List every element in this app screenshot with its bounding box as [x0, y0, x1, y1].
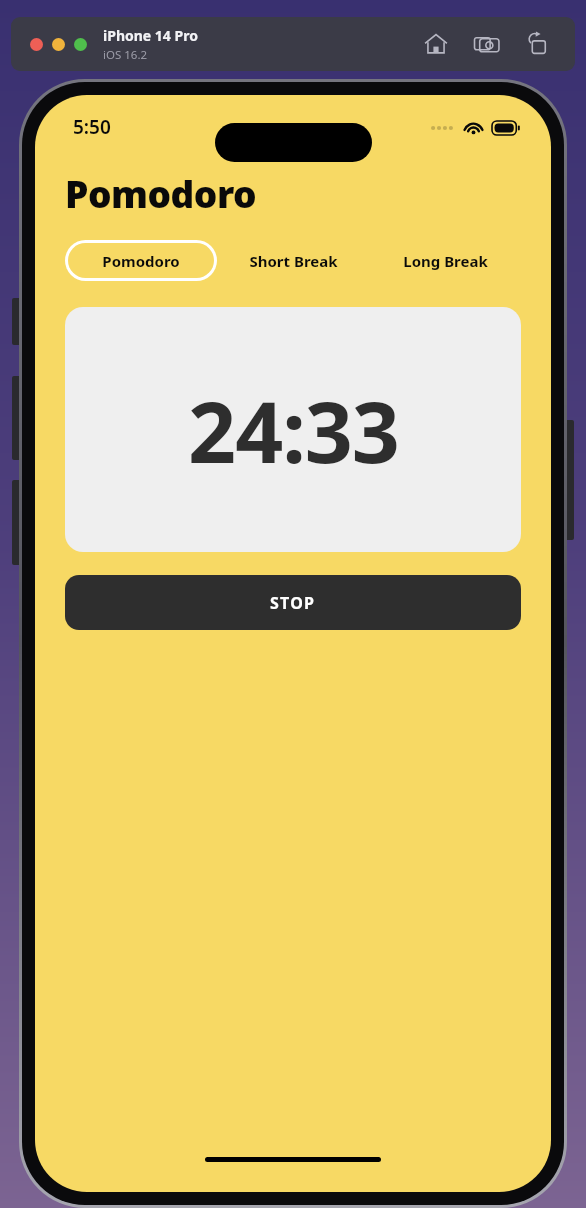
staticText: 24:33 — [188, 373, 399, 487]
button[interactable] — [74, 38, 87, 51]
button[interactable]: Pomodoro — [68, 243, 214, 278]
button[interactable] — [30, 38, 43, 51]
staticText: iOS 16.2 — [103, 47, 148, 63]
button[interactable]: Short Break — [217, 240, 369, 281]
button[interactable]: Rotate — [525, 31, 551, 57]
staticText: Pomodoro — [65, 168, 257, 218]
staticText: Short Break — [249, 251, 338, 271]
staticText: Pomodoro — [102, 251, 180, 271]
button[interactable]: Home — [423, 31, 449, 57]
button[interactable]: 24:33 — [65, 307, 521, 552]
button[interactable]: STOP — [65, 575, 521, 630]
button[interactable]: Long Break — [369, 240, 521, 281]
staticText: Long Break — [403, 251, 488, 271]
staticText: 5:50 — [73, 114, 111, 140]
button[interactable]: Screenshot — [474, 31, 500, 57]
staticText: STOP — [270, 592, 316, 614]
staticText: iPhone 14 Pro — [103, 26, 198, 45]
button[interactable] — [52, 38, 65, 51]
